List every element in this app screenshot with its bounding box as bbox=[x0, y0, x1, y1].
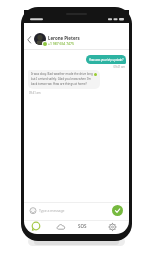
button[interactable] bbox=[29, 220, 43, 233]
staticText: 09:41 am bbox=[29, 91, 41, 95]
button[interactable]: How was your trip upstate? bbox=[86, 55, 126, 64]
staticText: 09:41 am bbox=[95, 65, 125, 69]
button[interactable] bbox=[112, 205, 123, 216]
staticText: How was your trip upstate? bbox=[89, 58, 124, 62]
button[interactable]: Type a message bbox=[24, 202, 129, 219]
staticText: Lerone Pieters bbox=[48, 35, 80, 41]
button[interactable]: It was okay. Bad weather made the drive … bbox=[28, 70, 100, 89]
button[interactable] bbox=[25, 34, 34, 46]
button[interactable]: SOS bbox=[78, 223, 87, 229]
staticText: +1 987 654 7475 bbox=[48, 41, 74, 46]
button[interactable] bbox=[34, 33, 46, 45]
button[interactable] bbox=[55, 221, 69, 233]
staticText: Type a message bbox=[39, 208, 65, 213]
staticText: It was okay. Bad weather made the drive … bbox=[31, 72, 93, 86]
button[interactable] bbox=[106, 221, 119, 233]
